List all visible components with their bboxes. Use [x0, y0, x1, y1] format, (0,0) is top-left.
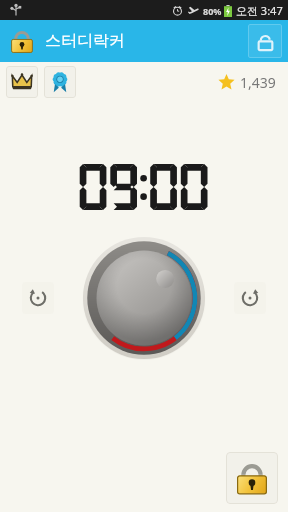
staticText: 1,439 [240, 73, 276, 92]
button[interactable]: Timer dial [82, 236, 206, 360]
button[interactable]: Forward [234, 282, 266, 314]
button[interactable]: 스터디락커 [9, 28, 125, 54]
button[interactable]: Achievements [44, 66, 76, 98]
staticText: 스터디락커 [45, 31, 125, 51]
staticText: 오전 3:47 [236, 3, 283, 18]
button[interactable]: Lock [226, 452, 278, 504]
button[interactable]: 1,439 [218, 73, 276, 92]
button[interactable]: Unlock [248, 24, 282, 58]
staticText: 80% [203, 5, 222, 17]
button[interactable]: Rewind [22, 282, 54, 314]
button[interactable]: Ranking [6, 66, 38, 98]
